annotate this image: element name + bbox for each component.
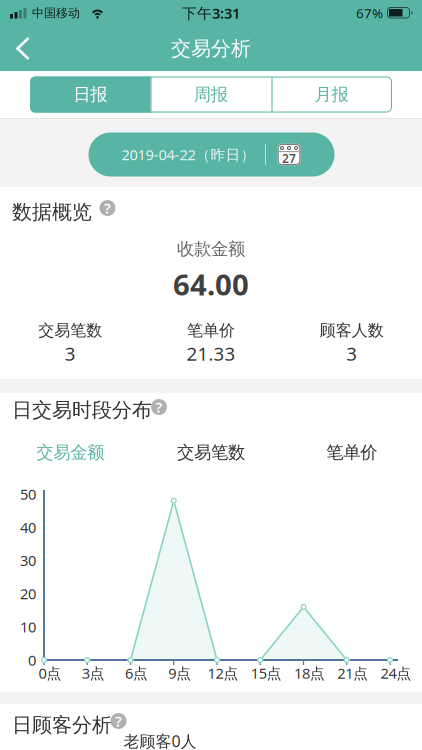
staticText: 12点 [207,663,238,683]
staticText: 日交易时段分布 [12,398,152,422]
staticText: 交易金额 [36,442,104,463]
button[interactable] [0,26,44,71]
staticText: 下午3:31 [182,3,240,23]
staticText: 3 [346,341,357,366]
staticText: 21点 [337,663,368,683]
staticText: 27 [282,150,296,166]
staticText: ? [104,198,111,218]
button[interactable]: 日报 [30,76,150,112]
staticText: 日顾客分析 [12,713,112,737]
staticText: 交易笔数 [177,442,245,463]
staticText: 67% [356,4,383,22]
staticText: 周报 [194,84,228,105]
staticText: 21.33 [186,341,235,366]
button[interactable]: 月报 [271,76,392,112]
staticText: 日报 [73,84,107,105]
staticText: 收款金额 [177,238,245,260]
staticText: 50 [20,484,36,504]
staticText: 月报 [314,84,348,105]
staticText: 0点 [38,663,61,683]
staticText: 9点 [168,663,191,683]
button[interactable]: 2019-04-22（昨日） [88,132,334,176]
staticText: 40 [20,517,36,537]
button[interactable]: 周报 [150,76,271,112]
staticText: 30 [20,551,36,570]
staticText: 0 [28,650,36,670]
staticText: 交易分析 [171,36,251,61]
staticText: 6点 [125,663,148,683]
button[interactable]: 交易金额 [0,437,140,467]
staticText: 笔单价 [187,321,235,340]
staticText: 15点 [251,663,282,683]
staticText: 交易笔数 [38,321,102,340]
staticText: 3点 [82,663,105,683]
button[interactable]: 笔单价 [282,437,422,467]
button[interactable]: 交易笔数 [141,437,281,467]
staticText: 笔单价 [326,442,377,463]
staticText: 24点 [380,663,411,683]
staticText: 顾客人数 [320,321,384,340]
staticText: 10 [20,617,36,637]
staticText: 2019-04-22（昨日） [121,145,255,164]
staticText: ? [115,711,122,731]
staticText: 3 [65,341,76,366]
staticText: 中国移动 [32,6,80,20]
staticText: 64.00 [173,264,249,303]
staticText: ? [155,397,162,417]
staticText: 18点 [294,663,325,683]
staticText: 数据概览 [12,200,92,224]
staticText: 老顾客0人 [123,730,196,750]
staticText: 20 [20,584,36,603]
